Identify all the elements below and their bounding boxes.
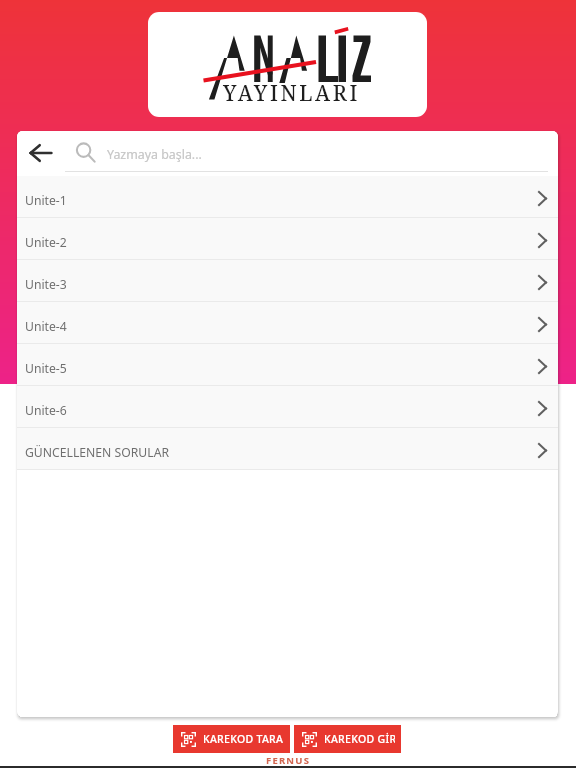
button[interactable]: Unite-6 bbox=[17, 386, 558, 427]
staticText: Unite-6 bbox=[25, 402, 67, 419]
staticText: GÜNCELLENEN SORULAR bbox=[25, 444, 169, 461]
staticText: Unite-1 bbox=[25, 192, 67, 209]
staticText: FERNUS bbox=[266, 754, 311, 767]
button[interactable]: Unite-5 bbox=[17, 344, 558, 385]
button[interactable]: KAREKOD GİR bbox=[294, 725, 401, 753]
staticText: YAYINLARI bbox=[223, 79, 361, 108]
button[interactable]: Unite-3 bbox=[17, 260, 558, 301]
button[interactable]: Unite-1 bbox=[17, 176, 558, 217]
staticText: Yazmaya başla... bbox=[107, 146, 202, 163]
staticText: Unite-2 bbox=[25, 234, 67, 251]
button[interactable]: Back bbox=[23, 135, 59, 171]
button[interactable]: Unite-2 bbox=[17, 218, 558, 259]
staticText: KAREKOD TARA bbox=[203, 732, 284, 746]
staticText: Unite-3 bbox=[25, 276, 67, 293]
button[interactable]: GÜNCELLENEN SORULAR bbox=[17, 428, 558, 469]
button[interactable]: KAREKOD TARA bbox=[173, 725, 290, 753]
staticText: Unite-5 bbox=[25, 360, 67, 377]
staticText: KAREKOD GİR bbox=[324, 732, 395, 746]
staticText: Unite-4 bbox=[25, 318, 67, 335]
button[interactable]: Unite-4 bbox=[17, 302, 558, 343]
